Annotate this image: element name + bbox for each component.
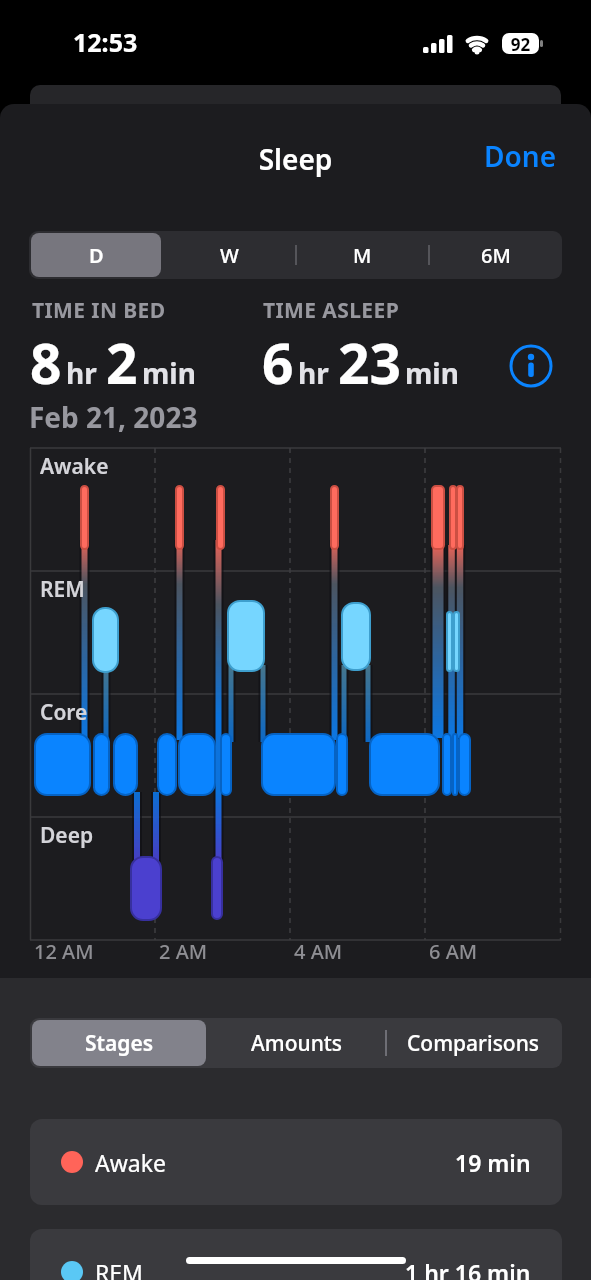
staticText: 12 AM [34, 938, 94, 965]
staticText: 23 [338, 325, 401, 400]
button[interactable]: Comparisons [387, 1020, 560, 1066]
staticText: Deep [40, 821, 94, 850]
staticText: 4 AM [294, 938, 343, 965]
staticText: 2 AM [159, 938, 208, 965]
staticText: 6M [481, 242, 511, 269]
staticText: REM [95, 1257, 143, 1280]
staticText: 6 AM [429, 938, 478, 965]
staticText: Done [484, 137, 557, 175]
button[interactable]: Amounts [210, 1020, 383, 1066]
staticText: Core [40, 698, 88, 727]
staticText: TIME IN BED [32, 296, 166, 325]
button[interactable]: D [31, 233, 161, 277]
staticText: hr [298, 354, 329, 392]
staticText: Amounts [251, 1029, 343, 1058]
staticText: Awake [40, 452, 109, 481]
button[interactable]: Awake [30, 1119, 562, 1205]
staticText: hr [66, 354, 97, 392]
staticText: TIME ASLEEP [263, 296, 400, 325]
staticText: W [220, 242, 239, 269]
staticText: min [405, 354, 459, 392]
staticText: D [89, 242, 104, 269]
staticText: Stages [85, 1029, 154, 1058]
staticText: 6 [262, 325, 294, 400]
button[interactable]: REM [30, 1229, 562, 1280]
staticText: 19 min [455, 1147, 531, 1178]
button[interactable]: Stages [32, 1020, 206, 1066]
staticText: 8 [30, 325, 62, 400]
staticText: M [353, 242, 372, 269]
button[interactable] [509, 344, 553, 388]
staticText: 2 [106, 325, 138, 400]
staticText: Comparisons [407, 1029, 540, 1058]
staticText: 92 [502, 33, 539, 56]
staticText: 12:53 [73, 25, 138, 59]
staticText: REM [40, 575, 85, 604]
staticText: min [142, 354, 196, 392]
staticText: 1 hr 16 min [405, 1257, 531, 1280]
staticText: Awake [95, 1147, 166, 1178]
button[interactable]: Done [470, 130, 570, 182]
staticText: Sleep [0, 140, 591, 178]
button[interactable]: 6M [431, 233, 560, 277]
button[interactable]: M [298, 233, 427, 277]
staticText: Feb 21, 2023 [29, 398, 198, 436]
button[interactable]: W [165, 233, 294, 277]
